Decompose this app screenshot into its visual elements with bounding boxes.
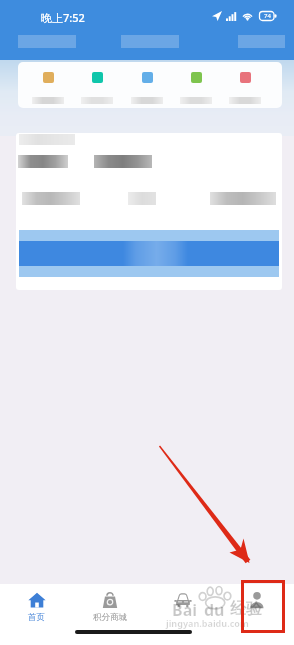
staticText: 晚上7:52	[41, 10, 85, 25]
staticText: 积分商城	[93, 612, 127, 623]
staticText: 首页	[28, 612, 45, 623]
button[interactable]: Quick action 3	[131, 66, 163, 106]
button[interactable]: Vehicle	[146, 584, 220, 628]
staticText: Bai	[172, 599, 198, 621]
button[interactable]: Quick action 1	[32, 66, 64, 106]
button[interactable]: Profile	[220, 584, 294, 628]
staticText: jingyan.baidu.com	[166, 617, 249, 629]
button[interactable]: Quick action 2	[81, 66, 113, 106]
button[interactable]: Points mall	[73, 584, 146, 628]
button[interactable]: Quick action 5	[229, 66, 261, 106]
staticText: du	[204, 599, 225, 621]
staticText: 74	[264, 12, 271, 20]
button[interactable]: Quick action 4	[180, 66, 212, 106]
button[interactable]: Primary action	[19, 230, 279, 277]
staticText: 经验	[230, 599, 262, 619]
button[interactable]: Home	[0, 584, 73, 628]
